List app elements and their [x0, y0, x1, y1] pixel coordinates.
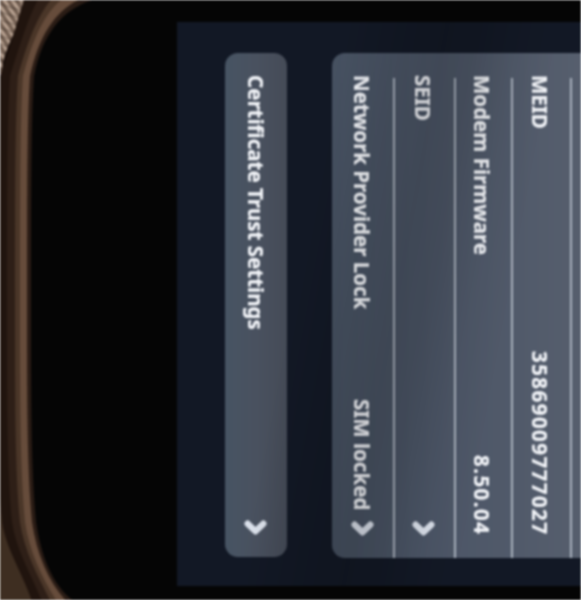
staticText: SEID: [409, 75, 437, 121]
button[interactable]: Network Provider Lock: [332, 53, 393, 558]
button[interactable]: Certificate Trust Settings: [225, 53, 287, 557]
staticText: Modem Firmware: [468, 75, 496, 256]
button[interactable]: Modem Firmware: [454, 53, 511, 558]
staticText: Network Provider Lock: [348, 75, 376, 310]
staticText: SIM locked: [348, 399, 376, 511]
staticText: 35869009777027: [526, 351, 554, 536]
staticText: 8.50.04: [468, 455, 496, 536]
staticText: MEID: [526, 75, 554, 129]
button[interactable]: Wi-Fi Address: [570, 53, 581, 558]
button[interactable]: SEID: [393, 53, 454, 558]
staticText: Certificate Trust Settings: [242, 75, 270, 330]
button[interactable]: MEID: [511, 53, 570, 558]
